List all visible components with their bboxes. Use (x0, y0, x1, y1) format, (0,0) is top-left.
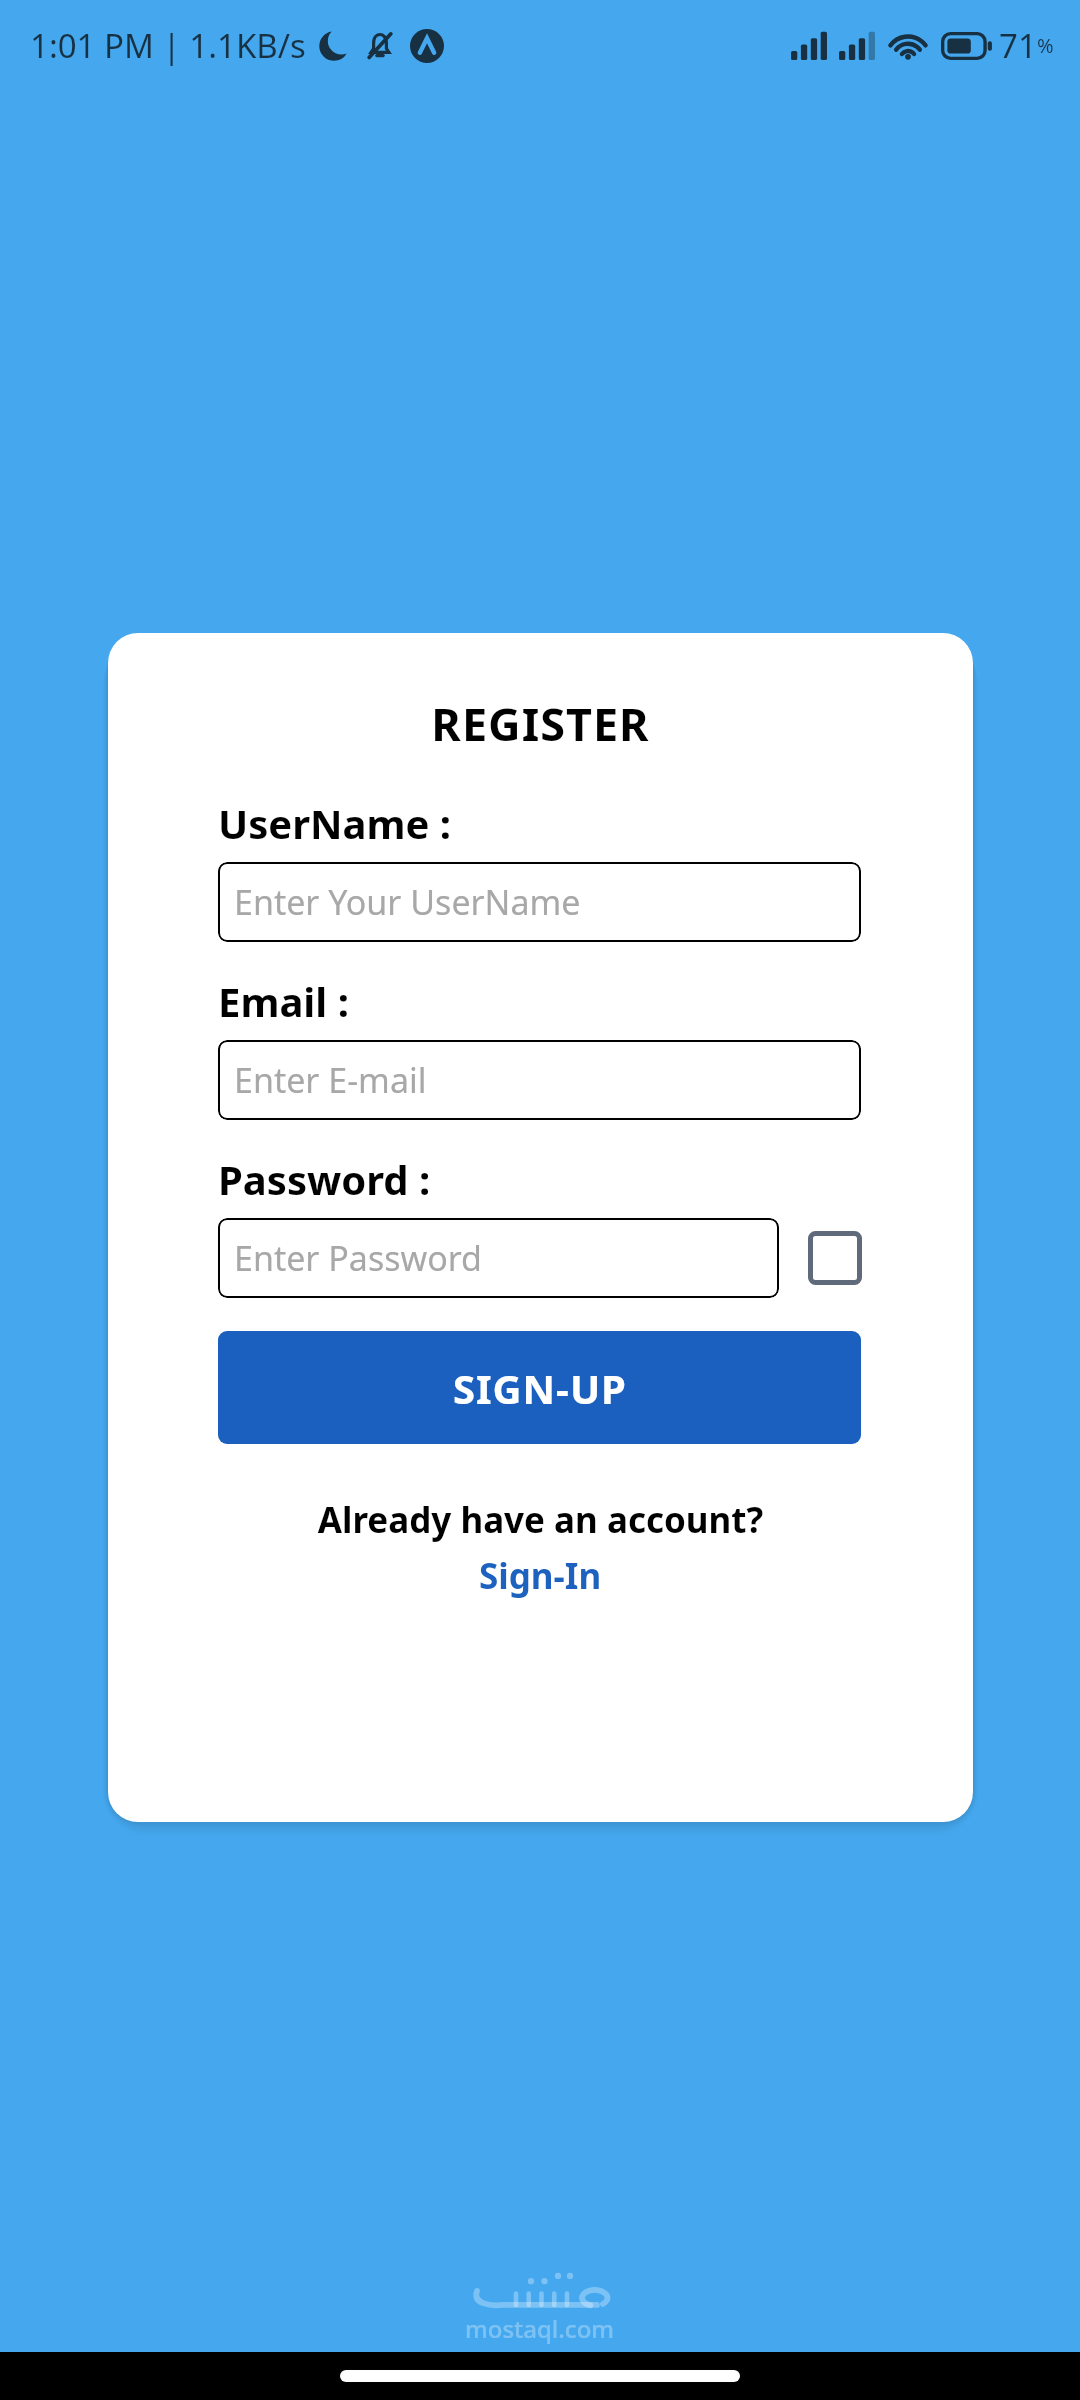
button[interactable]: SIGN-UP (218, 1331, 861, 1444)
staticText: Enter Your UserName (234, 879, 581, 925)
staticText: UserName : (218, 796, 452, 850)
staticText: Enter Password (234, 1235, 483, 1281)
staticText: mostaql.com (465, 2312, 615, 2345)
staticText: Already have an account? (108, 1496, 973, 1544)
button[interactable]: Password input (218, 1218, 779, 1298)
staticText: Enter E-mail (234, 1057, 427, 1103)
staticText: % (1037, 32, 1054, 59)
button[interactable]: UserName input (218, 862, 861, 942)
staticText: REGISTER (108, 693, 973, 754)
staticText: Email : (218, 974, 349, 1028)
staticText: SIGN-UP (453, 1361, 627, 1415)
button[interactable]: Email input (218, 1040, 861, 1120)
staticText: Sign-In (479, 1552, 602, 1600)
staticText: 1:01 PM | 1.1KB/s (30, 23, 306, 68)
button[interactable]: Show password (808, 1231, 862, 1285)
staticText: 71 (999, 23, 1037, 68)
button[interactable]: Sign-In (469, 1550, 612, 1602)
staticText: Password : (218, 1152, 431, 1206)
